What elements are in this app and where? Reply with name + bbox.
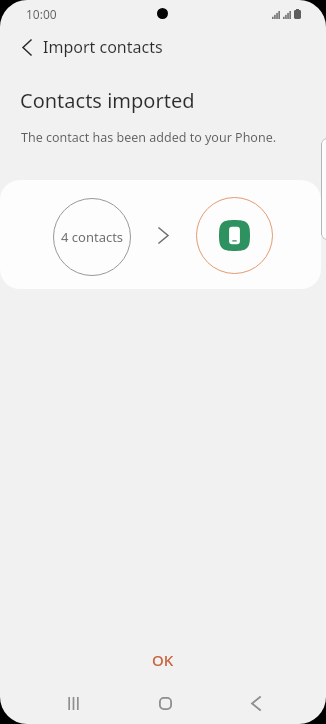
staticText: Contacts imported — [20, 87, 195, 114]
staticText: OK — [152, 650, 174, 670]
staticText: The contact has been added to your Phone… — [21, 129, 277, 146]
staticText: Import contacts — [43, 36, 163, 58]
staticText: 10:00 — [26, 6, 57, 22]
button[interactable]: OK — [126, 644, 200, 676]
button[interactable] — [321, 138, 326, 240]
button[interactable]: Home — [120, 682, 210, 724]
button[interactable]: Back — [211, 682, 301, 724]
staticText: 4 contacts — [61, 228, 124, 246]
button[interactable]: Navigate up — [0, 28, 43, 66]
button[interactable]: Recent apps — [28, 682, 118, 724]
button[interactable]: 4 contacts — [0, 180, 321, 289]
